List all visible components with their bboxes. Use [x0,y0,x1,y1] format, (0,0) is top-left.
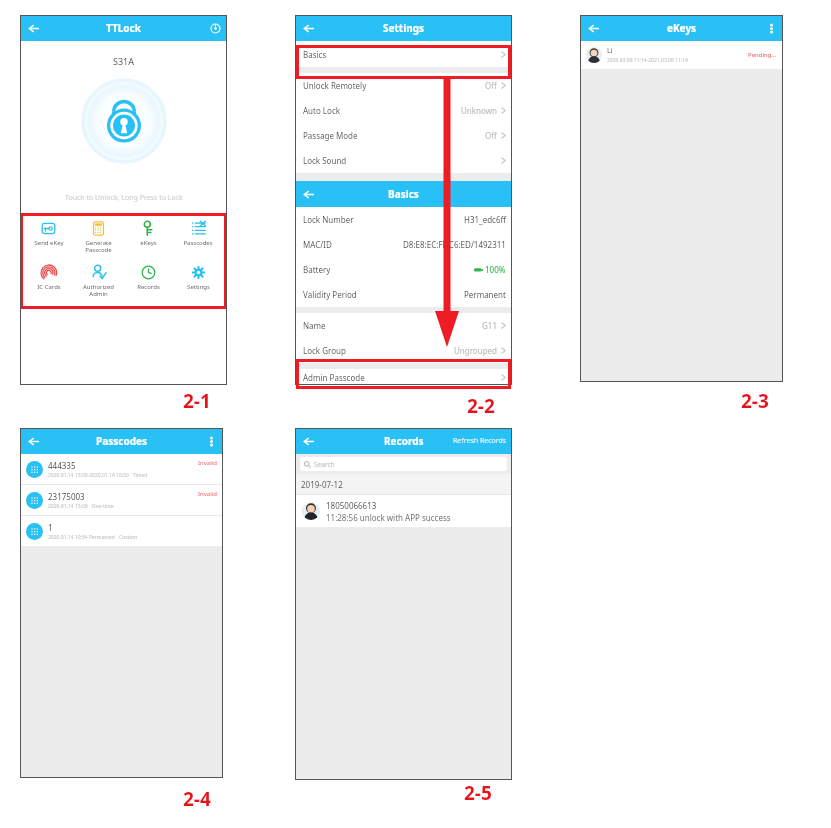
staticText: Unknown [461,105,497,116]
staticText: MAC/ID [303,239,332,250]
button[interactable]: Authorized Admin [73,264,123,302]
staticText: Name [303,320,326,331]
staticText: H31_edc6ff [464,214,506,225]
button[interactable]: More options [199,429,223,453]
staticText: S31A [113,55,134,67]
staticText: Passcodes [96,434,147,448]
button[interactable]: Back [20,428,46,454]
staticText: Admin Passcode [303,372,365,383]
staticText: Unlock Remotely [303,80,367,91]
button[interactable]: 23175003 [20,485,223,515]
button[interactable]: Send eKey [24,220,73,258]
staticText: 2-5 [464,780,492,806]
staticText: Records [137,283,160,291]
staticText: Pending... [748,51,777,59]
staticText: eKeys [140,239,157,247]
staticText: Authorized Admin [83,283,114,298]
button[interactable]: Lock Sound [295,148,512,173]
staticText: Basics [303,49,327,60]
button[interactable]: Lock settings [203,16,227,40]
staticText: IC Cards [37,283,61,291]
staticText: Passcodes [183,239,213,247]
button[interactable]: eKeys [123,220,173,258]
button[interactable]: Search [300,457,507,471]
staticText: Li [607,46,613,56]
button[interactable]: Back [20,15,46,41]
staticText: 11:28:56 unlock with APP success [326,512,451,523]
button[interactable]: 18050066613 [295,495,512,527]
button[interactable]: Unlock Remotely [295,73,512,98]
button[interactable]: Back [295,181,321,207]
button[interactable]: Passcodes [173,220,223,258]
staticText: 18050066613 [326,500,377,511]
button[interactable]: Basics [295,41,512,67]
staticText: Battery [303,264,331,275]
button[interactable]: Back [295,15,321,41]
staticText: Refresh Records [453,436,507,446]
staticText: Validity Period [303,289,357,300]
button[interactable]: Admin Passcode [295,369,512,385]
button[interactable]: Lock Group [295,338,512,363]
staticText: Settings [383,21,424,35]
button[interactable]: 444335 [20,454,223,484]
staticText: 2020.01.14 15:00 One-time [48,503,114,510]
button[interactable]: More options [759,16,783,40]
button[interactable]: Back [295,428,321,454]
staticText: Ungrouped [454,345,497,356]
button[interactable]: Settings [173,264,223,302]
staticText: Invalid [198,490,217,498]
staticText: 1 [48,522,53,533]
staticText: TTLock [106,21,141,35]
button[interactable]: Auto Lock [295,98,512,123]
staticText: eKeys [667,21,697,35]
staticText: Off [485,80,497,91]
staticText: 2020.01.14 10:54 Permanent Custom [48,534,138,541]
staticText: Lock Group [303,345,346,356]
button[interactable]: Passage Mode [295,123,512,148]
staticText: D8:E8:EC:FF:C6:ED/1492311 [403,239,506,250]
staticText: 2020.03.06 11:14-2021.03.06 11:14 [607,57,688,64]
staticText: Search [314,460,335,469]
staticText: Basics [388,187,419,201]
staticText: Generate Passcode [85,239,112,254]
button[interactable]: Refresh Records [448,436,512,446]
staticText: 2-4 [183,786,211,812]
staticText: Passage Mode [303,130,358,141]
staticText: G11 [482,320,497,331]
staticText: 2-3 [741,388,769,414]
button[interactable]: IC Cards [24,264,73,302]
staticText: Touch to Unlock, Long Press to Lock [65,193,183,203]
staticText: Permanent [464,289,506,300]
button[interactable]: Li [580,41,783,69]
staticText: Send eKey [34,239,64,247]
staticText: Invalid [198,459,217,467]
button[interactable]: Records [123,264,173,302]
staticText: Settings [187,283,210,291]
staticText: Auto Lock [303,105,341,116]
staticText: Off [485,130,497,141]
button[interactable]: Back [580,15,606,41]
staticText: 2019-07-12 [301,479,343,490]
button[interactable]: Generate Passcode [73,220,123,258]
staticText: Lock Number [303,214,354,225]
staticText: 100% [485,264,506,275]
staticText: Records [384,434,424,448]
staticText: Lock Sound [303,155,347,166]
button[interactable]: 1 [20,516,223,546]
staticText: 444335 [48,460,76,471]
staticText: 2020.01.14 15:00-2020.01.14 16:00 Timed [48,472,148,479]
staticText: 2-1 [183,388,211,414]
staticText: 2-2 [467,393,495,419]
staticText: 23175003 [48,491,85,502]
button[interactable]: Name [295,313,512,338]
